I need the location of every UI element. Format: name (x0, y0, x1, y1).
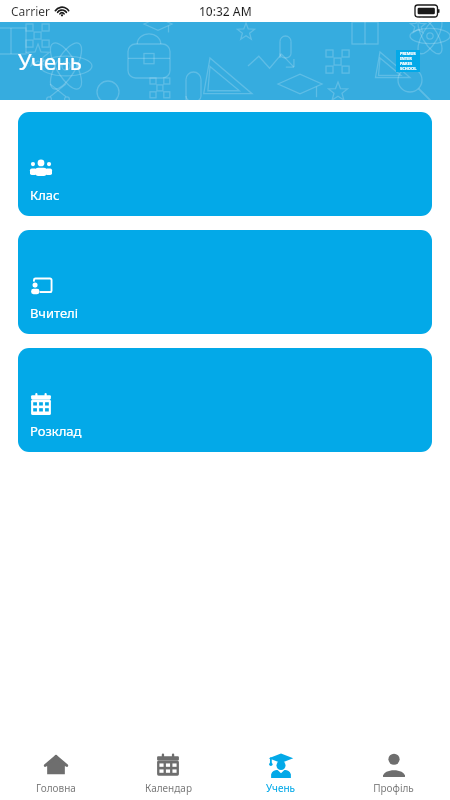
staticText: PRIMUS (400, 51, 416, 56)
staticText: INTER (400, 56, 412, 61)
staticText: Календар (145, 781, 192, 795)
button[interactable]: Календар (112, 730, 224, 800)
staticText: Профіль (373, 781, 414, 795)
staticText: Клас (30, 186, 60, 204)
staticText: Учень (266, 781, 295, 795)
staticText: Головна (36, 781, 76, 795)
button[interactable]: Клас (18, 112, 432, 216)
button[interactable]: Учень (224, 730, 337, 800)
staticText: Вчителі (30, 304, 79, 322)
button[interactable]: Розклад (18, 348, 432, 452)
staticText: Розклад (30, 422, 82, 440)
staticText: Учень (18, 46, 82, 76)
staticText: Carrier (11, 3, 51, 19)
button[interactable]: Вчителі (18, 230, 432, 334)
button[interactable]: Головна (0, 730, 112, 800)
staticText: PARES (400, 61, 413, 66)
staticText: SCHOOL (400, 66, 417, 71)
staticText: 10:32 AM (199, 3, 252, 19)
button[interactable]: Профіль (337, 730, 450, 800)
